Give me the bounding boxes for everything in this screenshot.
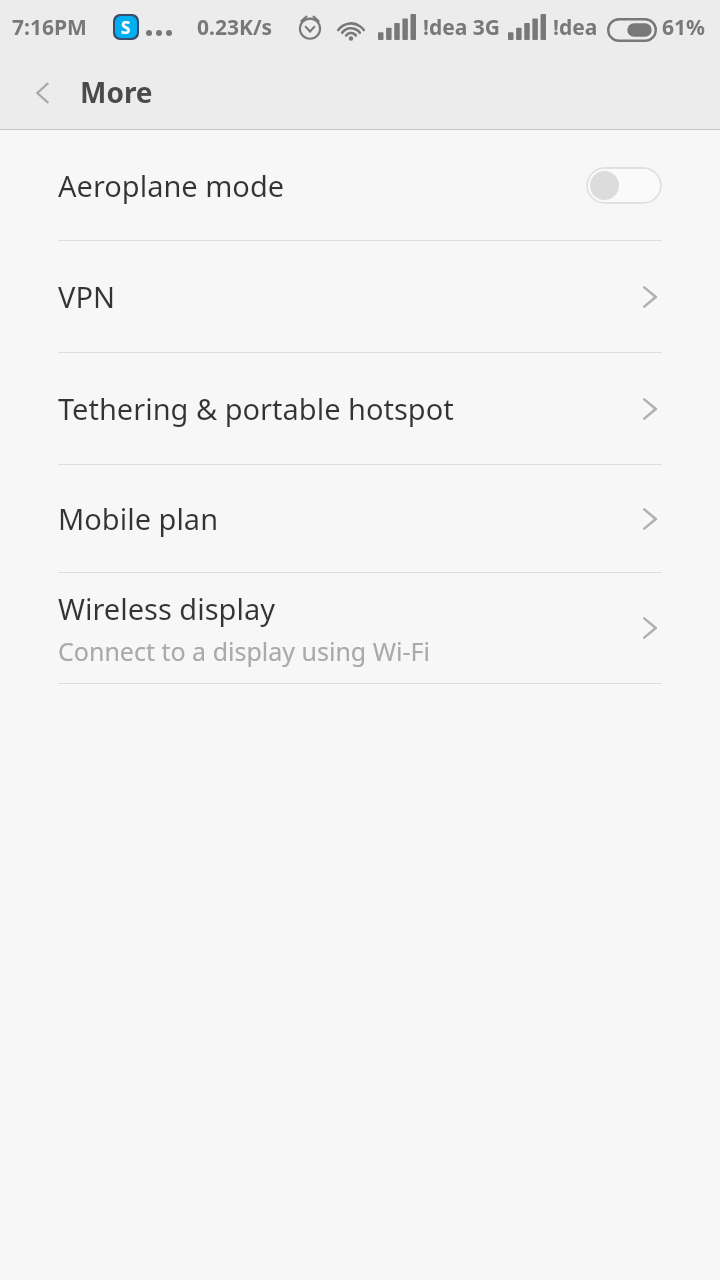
staticText: !dea — [553, 13, 598, 42]
staticText: Connect to a display using Wi-Fi — [58, 634, 430, 668]
staticText: VPN — [58, 277, 115, 316]
staticText: Mobile plan — [58, 499, 219, 538]
button[interactable]: Aeroplane mode toggle — [586, 167, 662, 204]
staticText: S — [121, 16, 131, 38]
staticText: 0.23K/s — [197, 13, 273, 42]
button[interactable]: Aeroplane mode — [0, 130, 720, 240]
button[interactable]: Wireless display — [0, 573, 720, 683]
staticText: !dea 3G — [423, 13, 500, 42]
staticText: Aeroplane mode — [58, 166, 285, 205]
staticText: 7:16PM — [12, 13, 87, 42]
staticText: Wireless display — [58, 589, 275, 628]
staticText: 61% — [662, 13, 705, 42]
staticText: More — [80, 73, 153, 111]
button[interactable]: Mobile plan — [0, 465, 720, 572]
button[interactable]: Back — [6, 56, 80, 129]
button[interactable]: Tethering & portable hotspot — [0, 353, 720, 464]
button[interactable]: VPN — [0, 241, 720, 352]
staticText: Tethering & portable hotspot — [58, 389, 454, 428]
